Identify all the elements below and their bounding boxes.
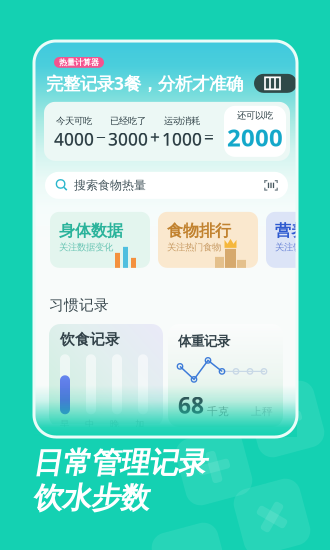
staticText: 日常管理记录 <box>33 445 207 481</box>
staticText: 饮食记录 <box>60 330 120 348</box>
button[interactable]: 食物排行 <box>158 212 258 268</box>
staticText: 营养 <box>275 221 307 240</box>
staticText: 1000 <box>162 128 202 151</box>
button[interactable]: 搜索食物热量 <box>45 172 288 199</box>
staticText: 食物排行 <box>167 221 231 240</box>
staticText: 体重记录 <box>178 333 230 349</box>
staticText: 关注饮 <box>275 241 302 253</box>
staticText: 热量计算器 <box>59 57 99 67</box>
staticText: 晚 <box>110 418 119 430</box>
staticText: 2000 <box>227 121 283 153</box>
staticText: 身体数据 <box>59 221 123 240</box>
staticText: 早 <box>60 418 69 430</box>
staticText: 关注数据变化 <box>59 241 113 253</box>
button[interactable]: 营养 <box>266 212 330 268</box>
staticText: 饮水步数 <box>33 480 149 516</box>
staticText: 加 <box>135 418 144 430</box>
staticText: 上秤 <box>251 405 273 418</box>
button[interactable]: 体重记录 <box>168 324 283 427</box>
staticText: 习惯记录 <box>49 296 109 314</box>
staticText: − <box>96 125 106 148</box>
staticText: 4000 <box>54 128 94 151</box>
staticText: 68 <box>178 390 204 420</box>
staticText: 运动消耗 <box>164 115 200 127</box>
staticText: 已经吃了 <box>110 115 146 127</box>
staticText: 3000 <box>108 128 148 151</box>
staticText: 今天可吃 <box>56 115 92 127</box>
staticText: = <box>204 125 214 148</box>
staticText: + <box>150 125 160 148</box>
staticText: 千克 <box>204 405 229 418</box>
staticText: 关注热门食物 <box>167 241 221 253</box>
button[interactable]: 食物库 <box>254 74 297 93</box>
button[interactable]: 身体数据 <box>50 212 150 268</box>
staticText: 完整记录3餐，分析才准确 <box>46 72 243 95</box>
staticText: 搜索食物热量 <box>74 178 146 193</box>
button[interactable]: 饮食记录 <box>49 324 163 427</box>
staticText: 中 <box>85 418 94 430</box>
staticText: 还可以吃 <box>237 110 273 121</box>
